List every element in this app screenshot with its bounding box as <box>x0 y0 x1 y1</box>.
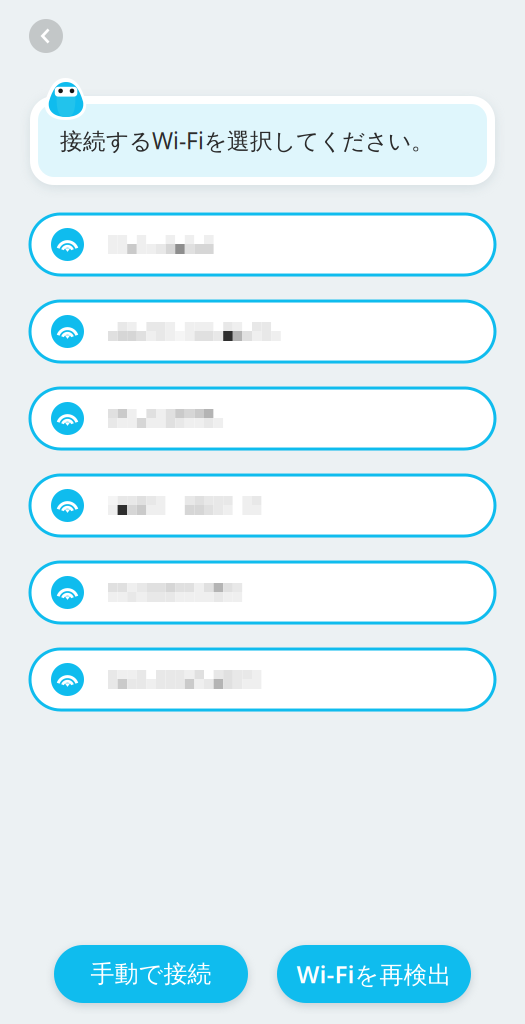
button[interactable]: Wi-Fi network <box>30 301 495 362</box>
staticText: 手動で接続 <box>90 959 211 989</box>
button[interactable]: Wi-Fi network <box>30 562 495 623</box>
button[interactable]: Back <box>24 14 68 58</box>
button[interactable]: Wi-Fi network <box>30 475 495 536</box>
button[interactable]: Wi-Fi network <box>30 649 495 710</box>
button[interactable]: Wi-Fiを再検出 <box>277 945 471 1003</box>
staticText: Wi-Fiを再検出 <box>296 958 451 990</box>
staticText: 接続するWi-Fiを選択してください。 <box>60 125 434 155</box>
button[interactable]: 手動で接続 <box>54 945 248 1003</box>
button[interactable]: Wi-Fi network <box>30 388 495 449</box>
button[interactable]: Wi-Fi network <box>30 214 495 275</box>
